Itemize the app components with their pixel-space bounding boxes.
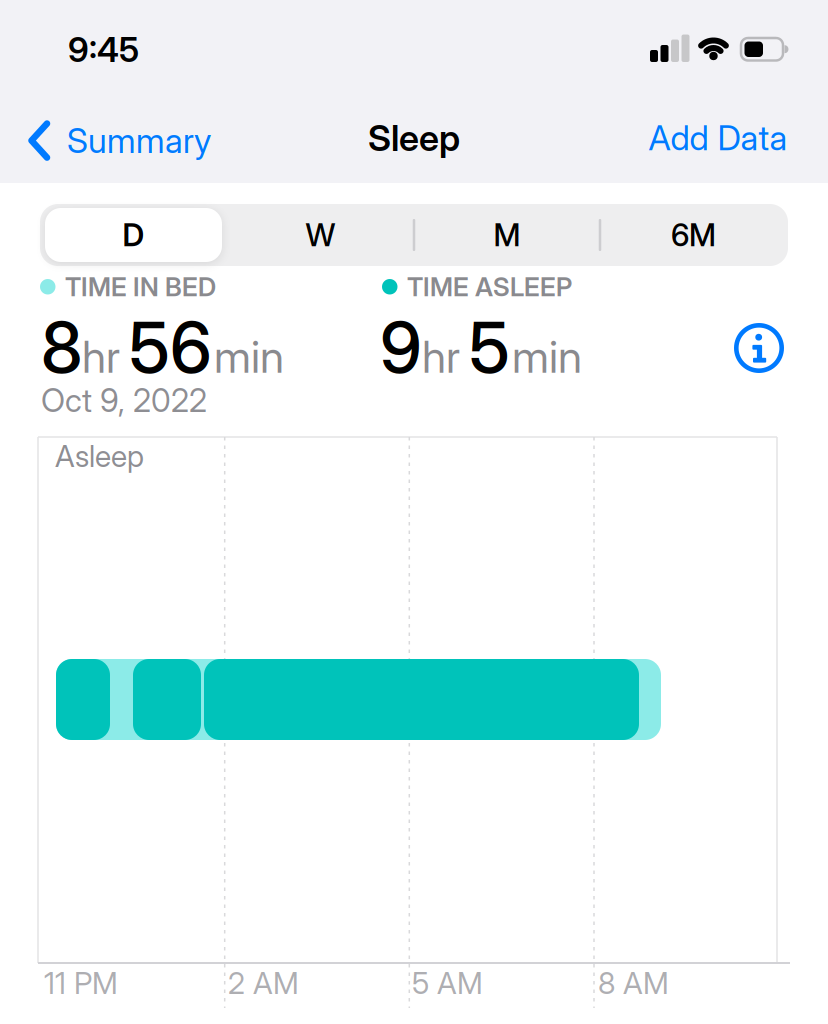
button[interactable]: Back to Summary — [28, 120, 211, 161]
button[interactable]: About Sleep — [734, 323, 784, 373]
staticText: 5 AM — [412, 965, 483, 1001]
staticText: Add Data — [648, 117, 787, 158]
staticText: min — [512, 330, 582, 383]
staticText: 8 — [41, 305, 82, 390]
staticText: 6M — [671, 216, 716, 254]
staticText: min — [214, 330, 284, 383]
button[interactable]: 6M — [600, 204, 786, 266]
staticText: 11 PM — [44, 965, 118, 1001]
staticText: hr — [82, 330, 120, 383]
button[interactable]: W — [227, 204, 413, 266]
staticText: hr — [422, 330, 460, 383]
staticText: 5 — [469, 305, 510, 390]
staticText: Asleep — [55, 438, 144, 474]
staticText: M — [493, 216, 520, 254]
staticText: 9 — [380, 305, 422, 390]
staticText: Sleep — [368, 116, 460, 160]
button[interactable]: Add Data — [648, 117, 787, 158]
staticText: TIME IN BED — [65, 271, 216, 302]
staticText: W — [305, 216, 335, 254]
staticText: 9:45 — [68, 29, 139, 70]
staticText: Summary — [67, 120, 211, 161]
staticText: 2 AM — [228, 965, 299, 1001]
staticText: 56 — [129, 305, 212, 390]
button[interactable]: D — [40, 204, 227, 266]
staticText: D — [122, 216, 144, 254]
staticText: Oct 9, 2022 — [41, 381, 207, 420]
button[interactable]: M — [414, 204, 600, 266]
staticText: TIME ASLEEP — [407, 271, 572, 302]
staticText: 8 AM — [598, 965, 669, 1001]
